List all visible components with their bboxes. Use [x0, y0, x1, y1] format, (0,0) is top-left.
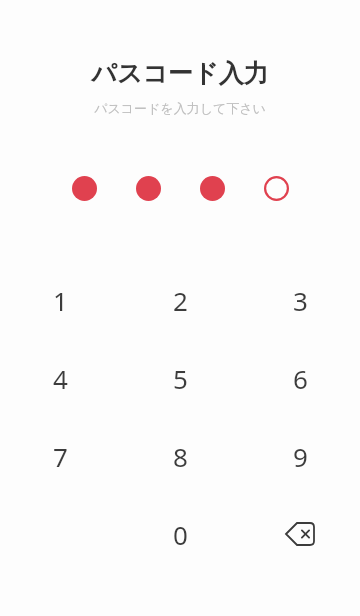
staticText: パスコードを入力して下さい — [94, 100, 266, 116]
staticText: 6 — [293, 361, 308, 396]
button[interactable]: 1 — [0, 261, 120, 339]
button[interactable]: Backspace — [240, 495, 360, 573]
staticText: 2 — [173, 283, 188, 318]
staticText: 9 — [293, 439, 308, 474]
staticText: 0 — [173, 517, 188, 552]
staticText: 1 — [53, 283, 68, 318]
button[interactable]: 0 — [120, 495, 240, 573]
button[interactable]: 9 — [240, 417, 360, 495]
staticText: 4 — [53, 361, 68, 396]
button[interactable]: 5 — [120, 339, 240, 417]
staticText: 5 — [173, 361, 188, 396]
staticText: 7 — [53, 439, 68, 474]
button[interactable]: 6 — [240, 339, 360, 417]
button[interactable]: 3 — [240, 261, 360, 339]
staticText: パスコード入力 — [91, 58, 269, 89]
staticText: 8 — [173, 439, 188, 474]
button[interactable]: 2 — [120, 261, 240, 339]
button[interactable]: 4 — [0, 339, 120, 417]
button[interactable]: 7 — [0, 417, 120, 495]
button[interactable]: 8 — [120, 417, 240, 495]
staticText: 3 — [293, 283, 308, 318]
